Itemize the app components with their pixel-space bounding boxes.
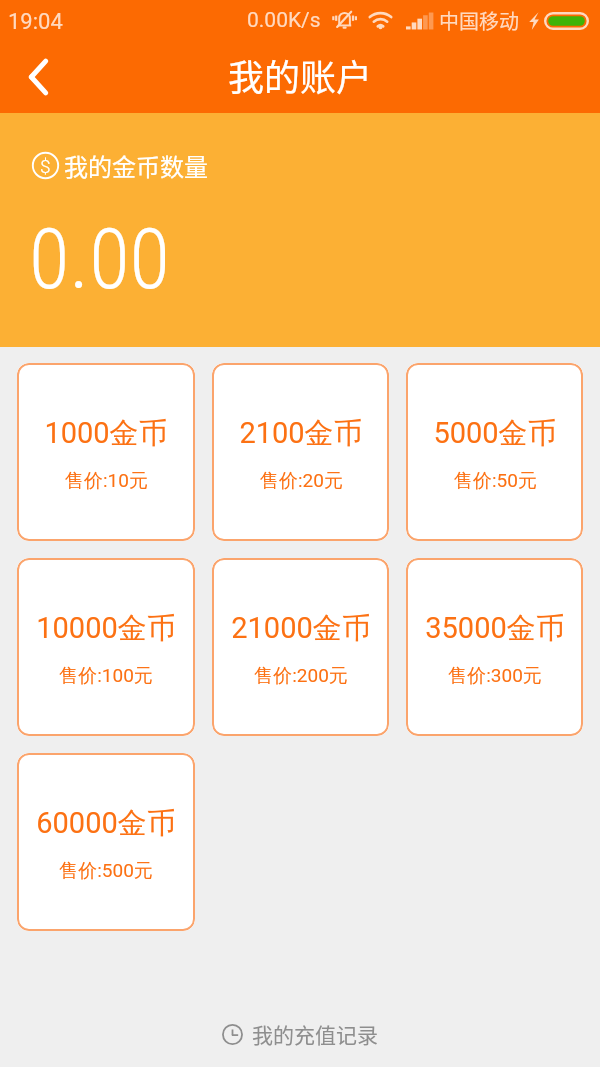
button[interactable]: 10000金币 <box>17 558 195 736</box>
staticText: 售价:500元 <box>59 859 153 883</box>
staticText: 35000金币 <box>425 610 565 647</box>
staticText: 售价:50元 <box>454 469 537 493</box>
staticText: 售价:20元 <box>260 469 343 493</box>
staticText: 0.00K/s <box>247 8 321 33</box>
staticText: 2100金币 <box>239 415 363 452</box>
button[interactable]: 60000金币 <box>17 753 195 931</box>
button[interactable]: 1000金币 <box>17 363 195 541</box>
button[interactable]: 5000金币 <box>406 363 583 541</box>
staticText: 中国移动 <box>439 6 519 35</box>
staticText: 10000金币 <box>36 610 176 647</box>
staticText: 5000金币 <box>433 415 557 452</box>
staticText: 19:04 <box>8 9 63 35</box>
staticText: 60000金币 <box>36 805 176 842</box>
button[interactable]: 21000金币 <box>212 558 389 736</box>
button[interactable]: 我的充值记录 <box>0 1011 600 1057</box>
staticText: 0.00 <box>29 211 170 308</box>
staticText: 21000金币 <box>231 610 371 647</box>
staticText: 售价:200元 <box>254 664 348 688</box>
staticText: 售价:100元 <box>59 664 153 688</box>
button[interactable]: 35000金币 <box>406 558 583 736</box>
staticText: $ <box>40 155 51 177</box>
staticText: 我的账户 <box>228 49 373 101</box>
button[interactable]: 2100金币 <box>212 363 389 541</box>
staticText: 1000金币 <box>44 415 168 452</box>
staticText: 我的充值记录 <box>252 1019 378 1049</box>
button[interactable]: Back <box>0 41 72 113</box>
staticText: 售价:10元 <box>65 469 148 493</box>
staticText: 售价:300元 <box>448 664 542 688</box>
staticText: 我的金币数量 <box>64 148 208 183</box>
